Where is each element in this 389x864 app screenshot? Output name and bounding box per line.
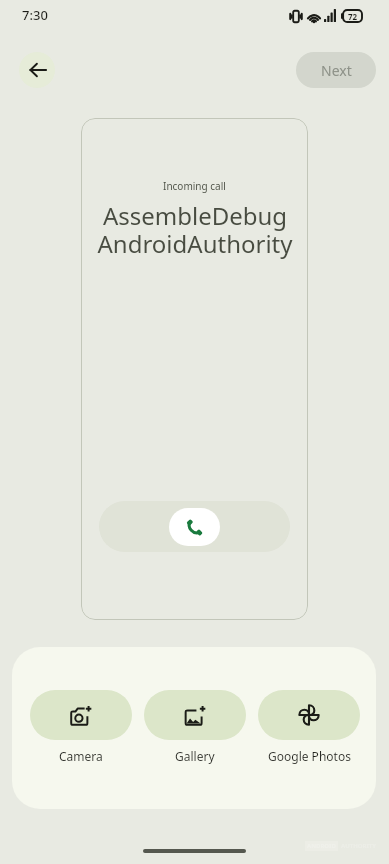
staticText: Camera — [59, 748, 103, 764]
other: Answer call — [169, 508, 220, 546]
staticText: Google Photos — [268, 748, 351, 764]
button[interactable]: Google Photos — [258, 690, 360, 740]
button[interactable]: Next — [296, 52, 376, 88]
staticText: Next — [321, 61, 352, 80]
staticText: 72 — [348, 11, 358, 22]
staticText: 7:30 — [22, 6, 48, 24]
button[interactable]: Answer call — [99, 501, 290, 552]
staticText: Gallery — [175, 748, 215, 764]
button[interactable]: Back — [19, 52, 55, 88]
staticText: Incoming call — [163, 179, 226, 193]
button[interactable]: Gallery — [144, 690, 246, 740]
button[interactable]: Camera — [30, 690, 132, 740]
staticText: AssembleDebug AndroidAuthority — [97, 199, 293, 260]
